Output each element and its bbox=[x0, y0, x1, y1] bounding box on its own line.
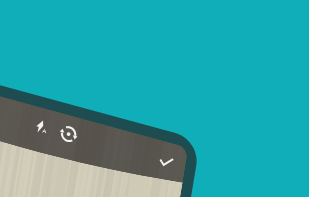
button[interactable]: Flash mode: auto bbox=[26, 114, 54, 142]
button[interactable]: Switch camera bbox=[55, 120, 83, 148]
button[interactable]: Accept photo bbox=[152, 147, 182, 177]
